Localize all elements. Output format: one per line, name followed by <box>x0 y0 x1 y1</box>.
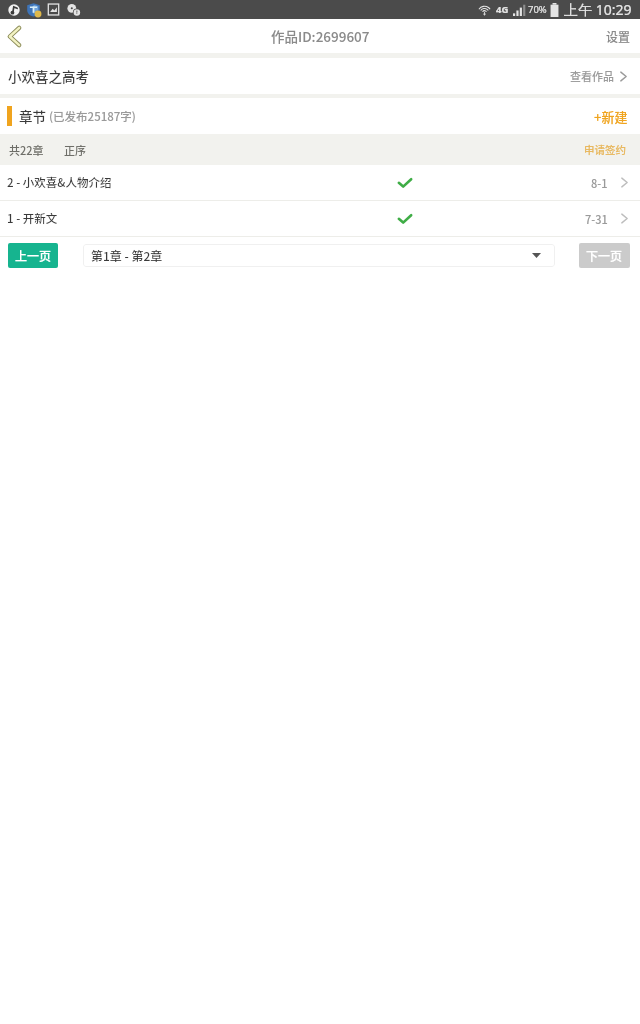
button[interactable]: Back <box>0 19 28 53</box>
staticText: 8-1 <box>591 175 608 191</box>
staticText: 1 - 开新文 <box>7 210 58 227</box>
staticText: 4G <box>496 3 509 16</box>
button[interactable]: 上一页 <box>8 243 58 268</box>
staticText: 章节 <box>19 106 46 126</box>
staticText: +新建 <box>594 107 628 126</box>
staticText: 第1章 - 第2章 <box>91 247 163 264</box>
button[interactable]: 小欢喜之高考 <box>0 58 640 94</box>
staticText: 正序 <box>64 142 86 158</box>
button[interactable]: 申请签约 <box>570 134 640 165</box>
button[interactable]: 设置 <box>597 19 640 53</box>
staticText: 小欢喜之高考 <box>8 66 89 86</box>
button[interactable]: 正序 <box>64 136 86 164</box>
staticText: 7-31 <box>585 211 608 227</box>
staticText: 设置 <box>606 28 631 45</box>
staticText: 下一页 <box>586 247 623 264</box>
staticText: 申请签约 <box>584 142 626 157</box>
staticText: (已发布25187字) <box>49 108 136 125</box>
staticText: 共22章 <box>9 142 44 158</box>
staticText: 作品ID:2699607 <box>271 26 370 46</box>
button[interactable]: 下一页 <box>579 243 630 268</box>
staticText: 2 - 小欢喜&人物介绍 <box>7 174 112 191</box>
button[interactable]: +新建 <box>582 98 640 134</box>
staticText: 查看作品 <box>570 68 614 84</box>
button[interactable]: 第1章 - 第2章 <box>83 244 555 267</box>
staticText: 上午 10:29 <box>564 0 632 19</box>
staticText: 70% <box>528 3 547 16</box>
button[interactable]: 1 - 开新文 <box>0 201 640 236</box>
staticText: 上一页 <box>15 247 52 264</box>
button[interactable]: 2 - 小欢喜&人物介绍 <box>0 165 640 200</box>
